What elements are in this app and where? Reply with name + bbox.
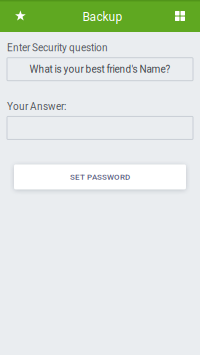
button[interactable]: Your answer: [0, 112, 200, 139]
staticText: Backup: [82, 10, 122, 24]
button[interactable]: What is your best friend's Name?: [0, 54, 200, 81]
staticText: Your Answer:: [7, 101, 66, 112]
staticText: SET PASSWORD: [70, 172, 130, 182]
staticText: Enter Security question: [7, 42, 108, 54]
button[interactable]: SET PASSWORD: [0, 139, 200, 189]
button[interactable]: Favourites: [0, 0, 36, 32]
button[interactable]: Apps: [165, 0, 200, 32]
staticText: What is your best friend's Name?: [29, 63, 170, 75]
